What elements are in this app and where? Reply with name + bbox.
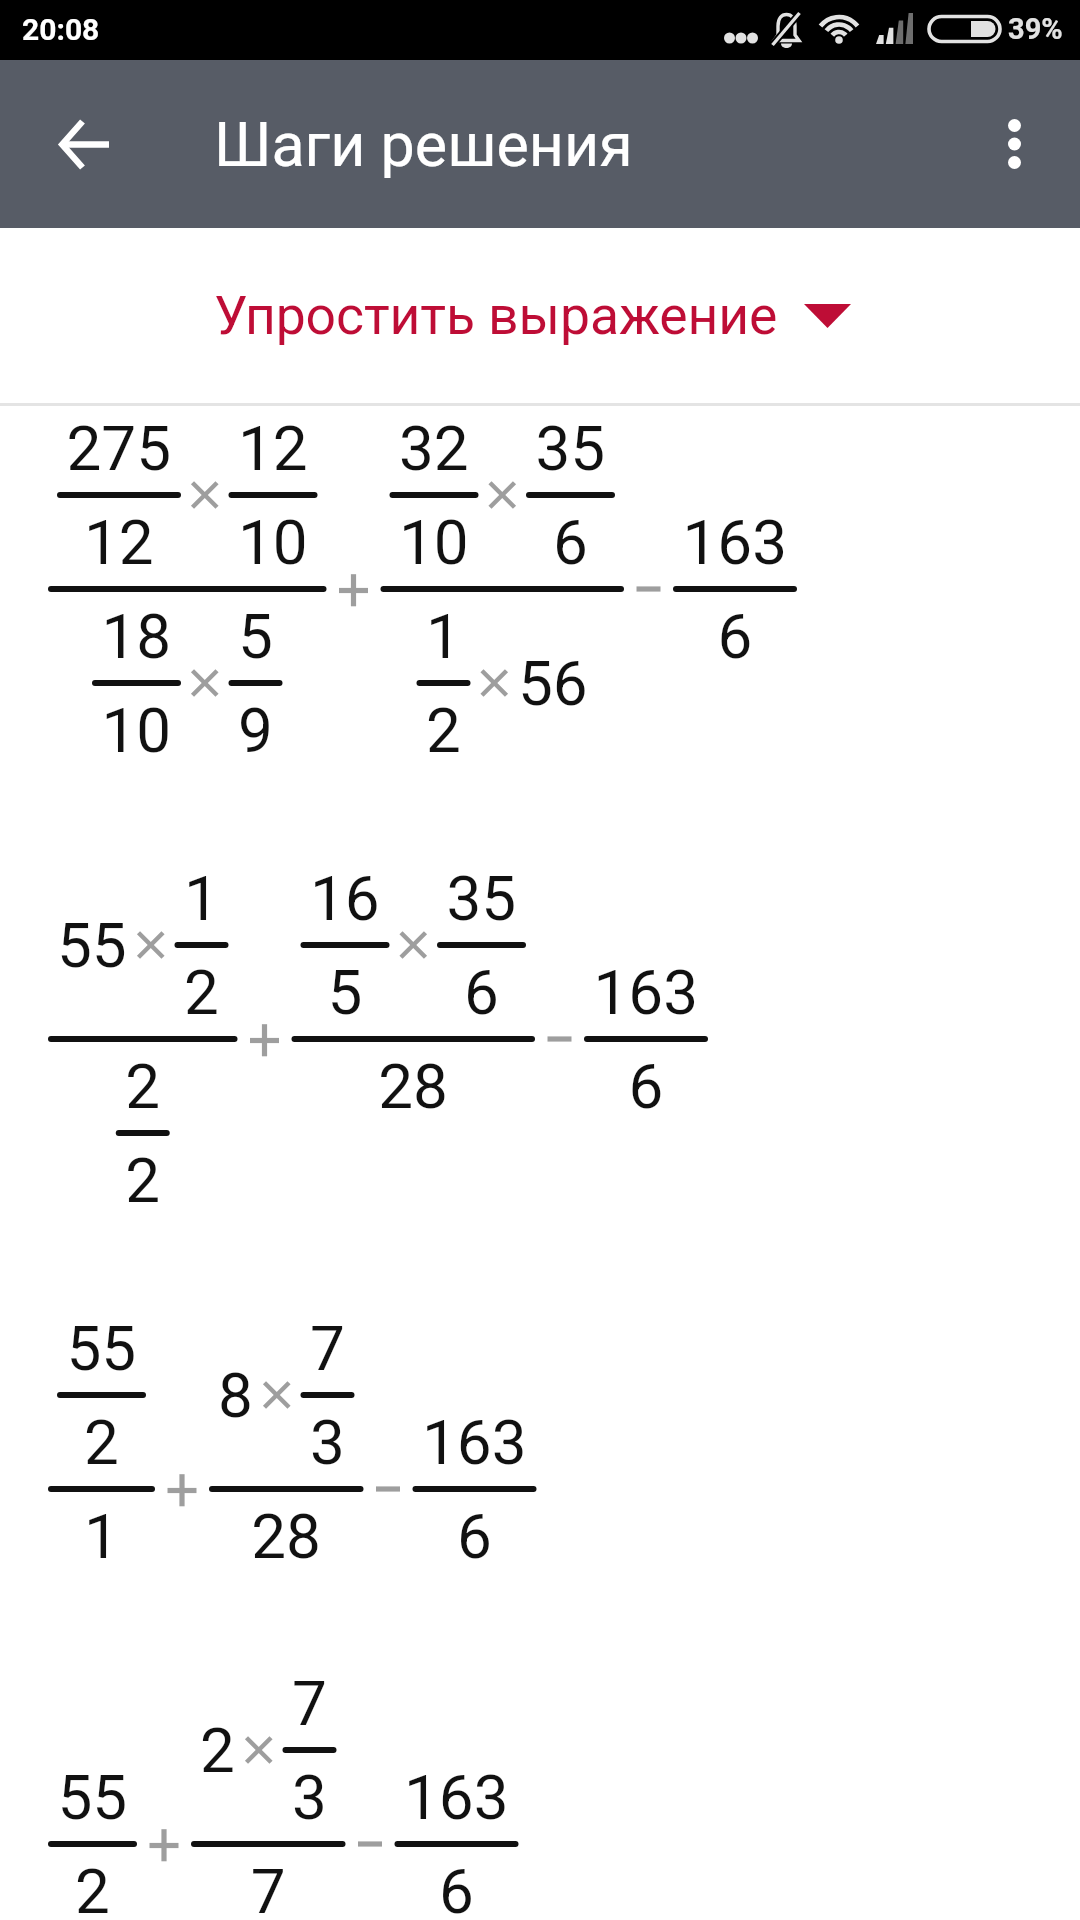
button[interactable]: More options xyxy=(964,94,1064,194)
button[interactable]: Упростить выражение xyxy=(0,228,1080,403)
button[interactable]: Back xyxy=(34,94,134,194)
button[interactable] xyxy=(0,1250,1080,1620)
staticText: Упростить выражение xyxy=(214,284,778,347)
button[interactable] xyxy=(0,406,1080,850)
staticText: Шаги решения xyxy=(214,109,633,180)
button[interactable] xyxy=(0,850,1080,1250)
button[interactable] xyxy=(0,1620,1080,1920)
